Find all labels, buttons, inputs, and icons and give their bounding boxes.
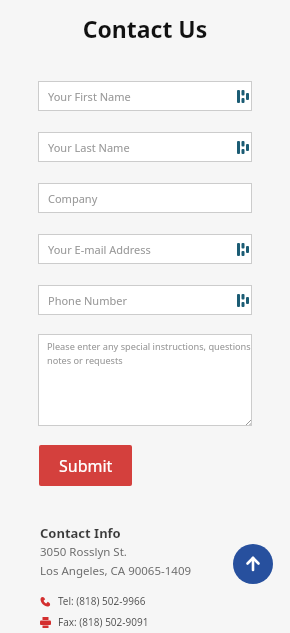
button[interactable]: Your First Name xyxy=(38,81,252,111)
button[interactable] xyxy=(233,544,273,584)
staticText: 3050 Rosslyn St. xyxy=(40,544,127,560)
button[interactable]: Fax: (818) 502-9091 xyxy=(40,615,149,629)
staticText: notes or requests xyxy=(47,354,123,367)
staticText: Company xyxy=(48,191,98,206)
button[interactable]: Your E-mail Address xyxy=(38,234,252,264)
staticText: Submit xyxy=(59,455,113,477)
button[interactable]: Please enter any special instructions, q… xyxy=(38,334,252,426)
staticText: Please enter any special instructions, q… xyxy=(47,340,252,353)
staticText: Contact Info xyxy=(40,524,121,542)
staticText: Your First Name xyxy=(48,89,131,104)
button[interactable]: Phone Number xyxy=(38,285,252,315)
button[interactable]: Company xyxy=(38,183,252,213)
staticText: Fax: (818) 502-9091 xyxy=(58,615,149,629)
staticText: Your Last Name xyxy=(48,140,130,155)
button[interactable]: Your Last Name xyxy=(38,132,252,162)
staticText: Your E-mail Address xyxy=(48,242,151,257)
button[interactable]: Tel: (818) 502-9966 xyxy=(40,594,146,608)
staticText: Contact Us xyxy=(0,13,290,44)
button[interactable]: Submit xyxy=(39,445,132,486)
staticText: Los Angeles, CA 90065-1409 xyxy=(40,563,192,579)
staticText: Tel: (818) 502-9966 xyxy=(58,594,146,608)
staticText: Phone Number xyxy=(48,293,127,308)
